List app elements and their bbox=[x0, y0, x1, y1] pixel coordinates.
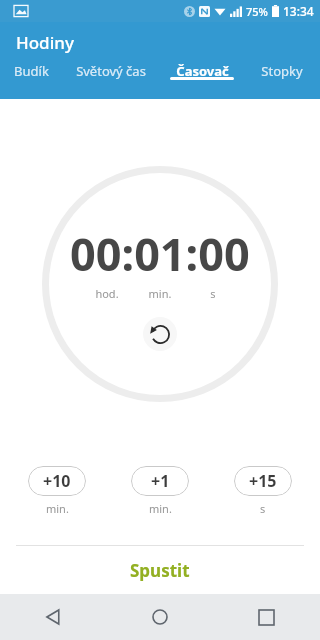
staticText: Spustit bbox=[130, 559, 190, 582]
staticText: +10 bbox=[43, 470, 71, 492]
staticText: 13:34 bbox=[283, 3, 314, 19]
staticText: s bbox=[260, 501, 266, 516]
staticText: 00:01:00 bbox=[70, 223, 250, 284]
staticText: s bbox=[190, 286, 236, 301]
button[interactable]: +10 bbox=[28, 466, 86, 496]
button[interactable]: Recent apps bbox=[213, 594, 320, 640]
staticText: min. bbox=[46, 501, 69, 516]
staticText: Stopky bbox=[261, 62, 303, 80]
button[interactable]: Stopky bbox=[244, 62, 320, 80]
staticText: +1 bbox=[151, 470, 170, 492]
button[interactable]: Spustit bbox=[0, 546, 320, 594]
button[interactable]: Home bbox=[106, 594, 213, 640]
button[interactable]: +15 bbox=[234, 466, 292, 496]
staticText: Časovač bbox=[176, 62, 229, 80]
staticText: min. bbox=[149, 501, 172, 516]
staticText: Hodiny bbox=[16, 31, 74, 54]
button[interactable]: Časovač bbox=[160, 62, 244, 80]
staticText: +15 bbox=[249, 470, 277, 492]
button[interactable]: Budík bbox=[0, 62, 62, 80]
staticText: Světový čas bbox=[76, 62, 146, 80]
staticText: 75% bbox=[246, 4, 268, 19]
staticText: Budík bbox=[14, 62, 49, 80]
button[interactable]: +1 bbox=[131, 466, 189, 496]
button[interactable]: Back bbox=[0, 594, 106, 640]
button[interactable]: Reset timer bbox=[143, 317, 177, 351]
staticText: min. bbox=[137, 286, 183, 301]
staticText: hod. bbox=[84, 286, 130, 301]
button[interactable]: Světový čas bbox=[62, 62, 160, 80]
